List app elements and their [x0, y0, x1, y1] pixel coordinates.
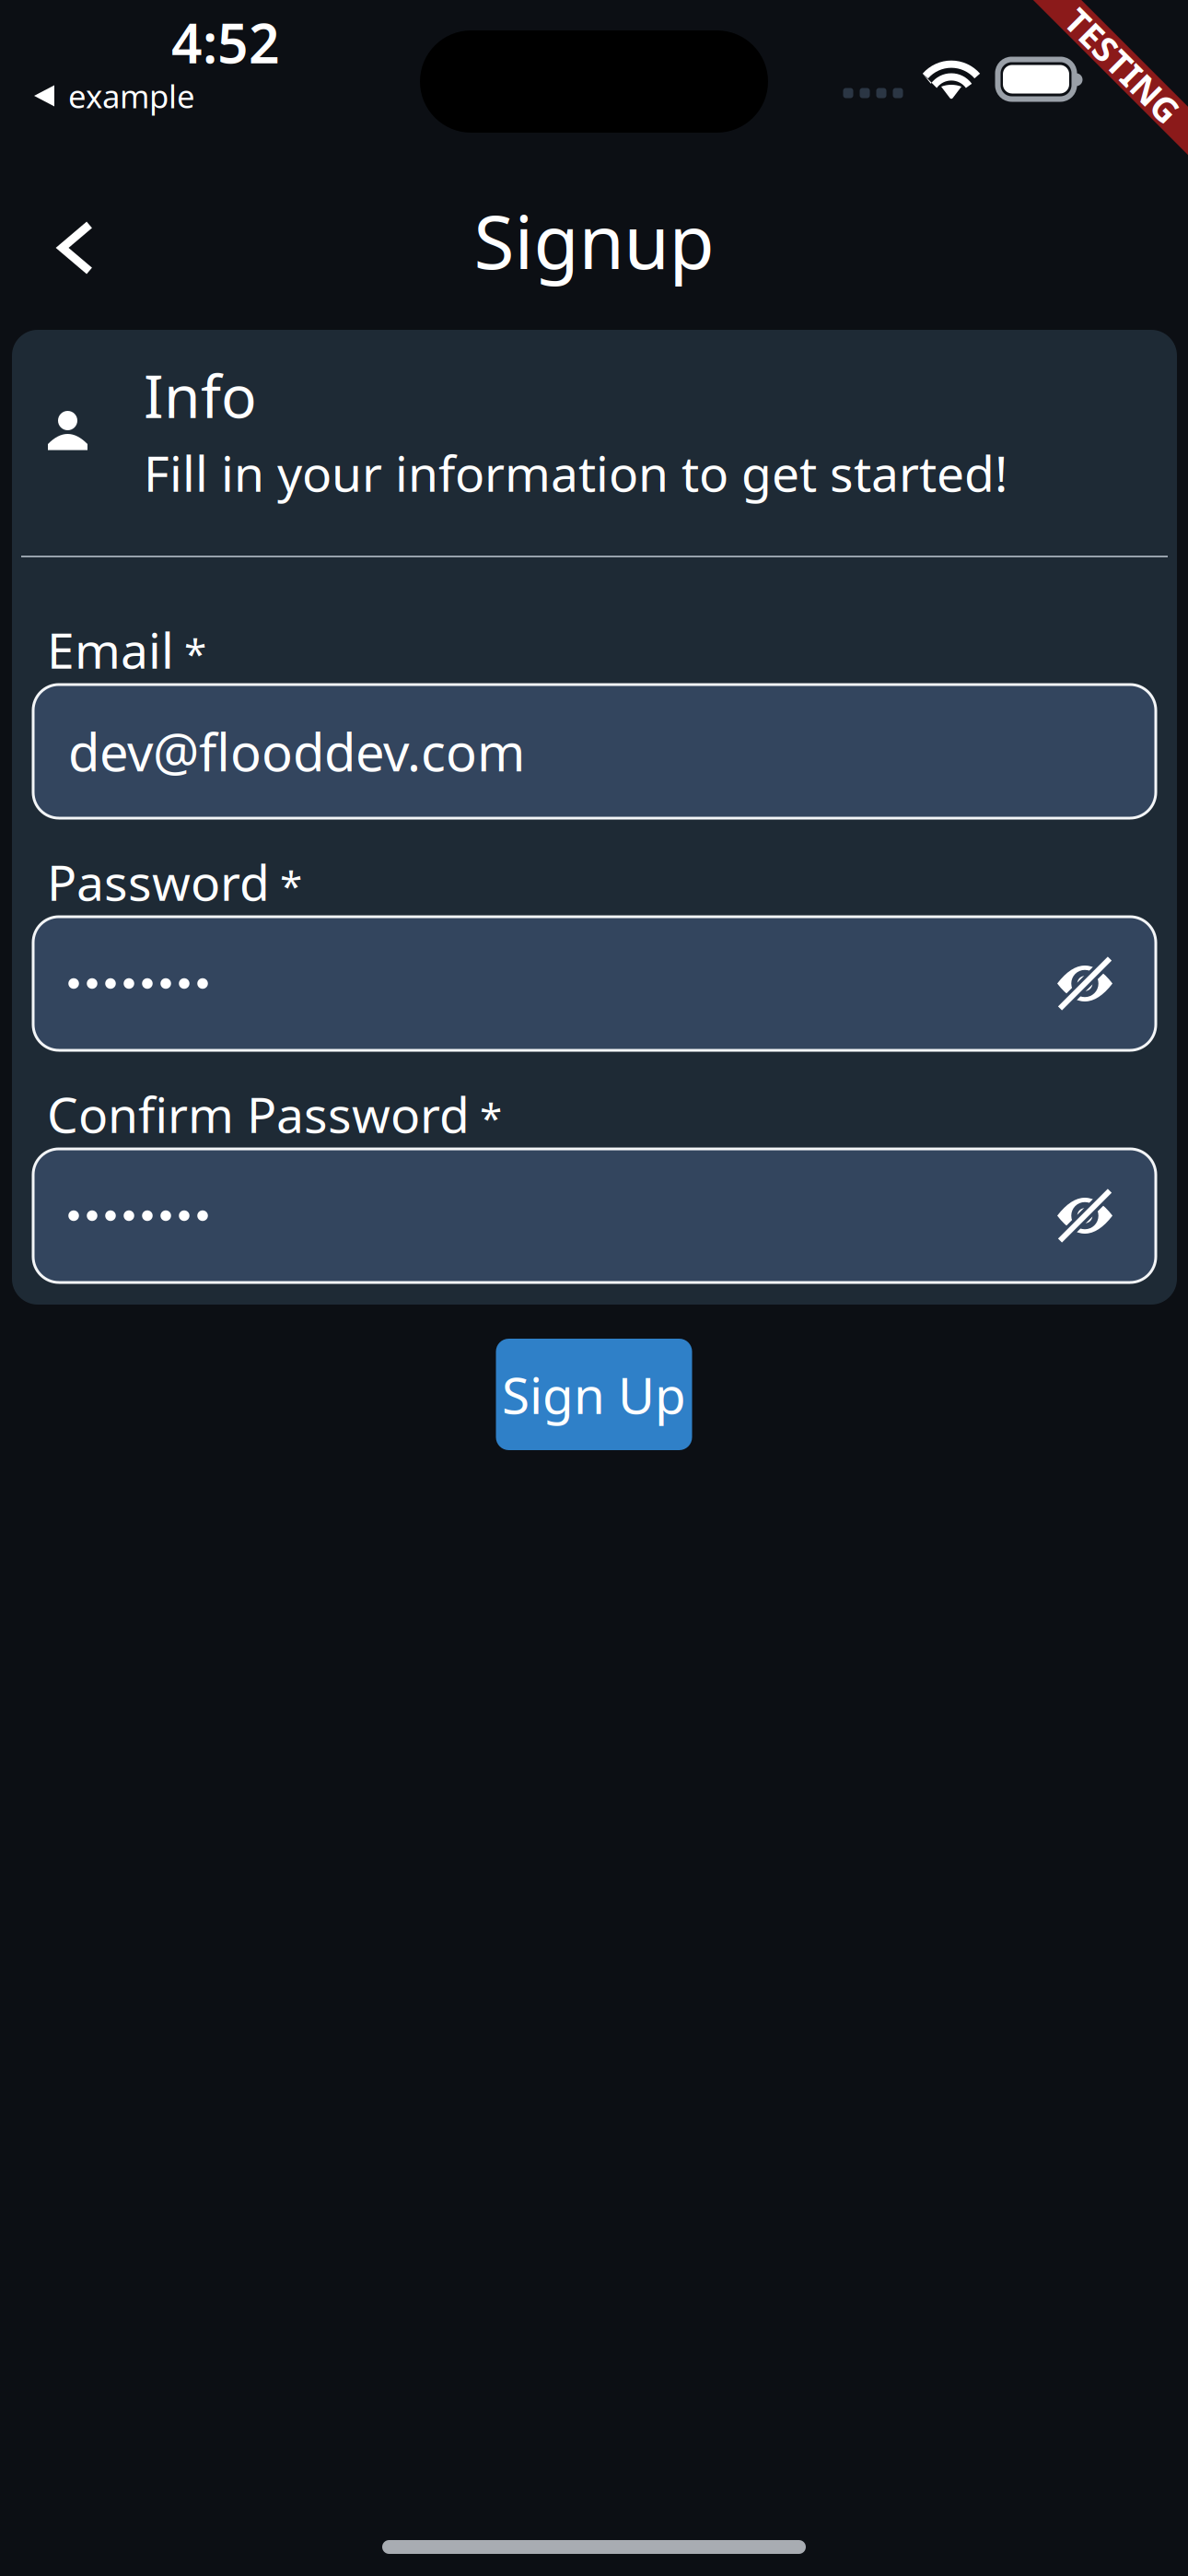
staticText: Password: [47, 849, 270, 914]
button[interactable]: Back to example: [0, 0, 1188, 114]
button[interactable]: Show password: [1046, 945, 1124, 1022]
staticText: dev@flooddev.com: [68, 717, 525, 786]
button[interactable]: Sign Up: [496, 1339, 692, 1450]
staticText: Info: [144, 356, 257, 434]
staticText: Email: [47, 617, 174, 682]
staticText: Fill in your information to get started!: [144, 440, 1007, 505]
staticText: *: [470, 1090, 502, 1144]
button[interactable]: Show password: [1046, 1177, 1124, 1254]
staticText: Signup: [474, 192, 714, 289]
staticText: Confirm Password: [47, 1081, 470, 1146]
staticText: Sign Up: [502, 1361, 686, 1428]
staticText: *: [174, 626, 206, 680]
staticText: TESTING: [1050, 43, 1188, 88]
button[interactable]: Back: [20, 193, 131, 303]
staticText: 4:52: [171, 6, 280, 78]
staticText: *: [270, 858, 302, 912]
staticText: example: [68, 75, 195, 117]
